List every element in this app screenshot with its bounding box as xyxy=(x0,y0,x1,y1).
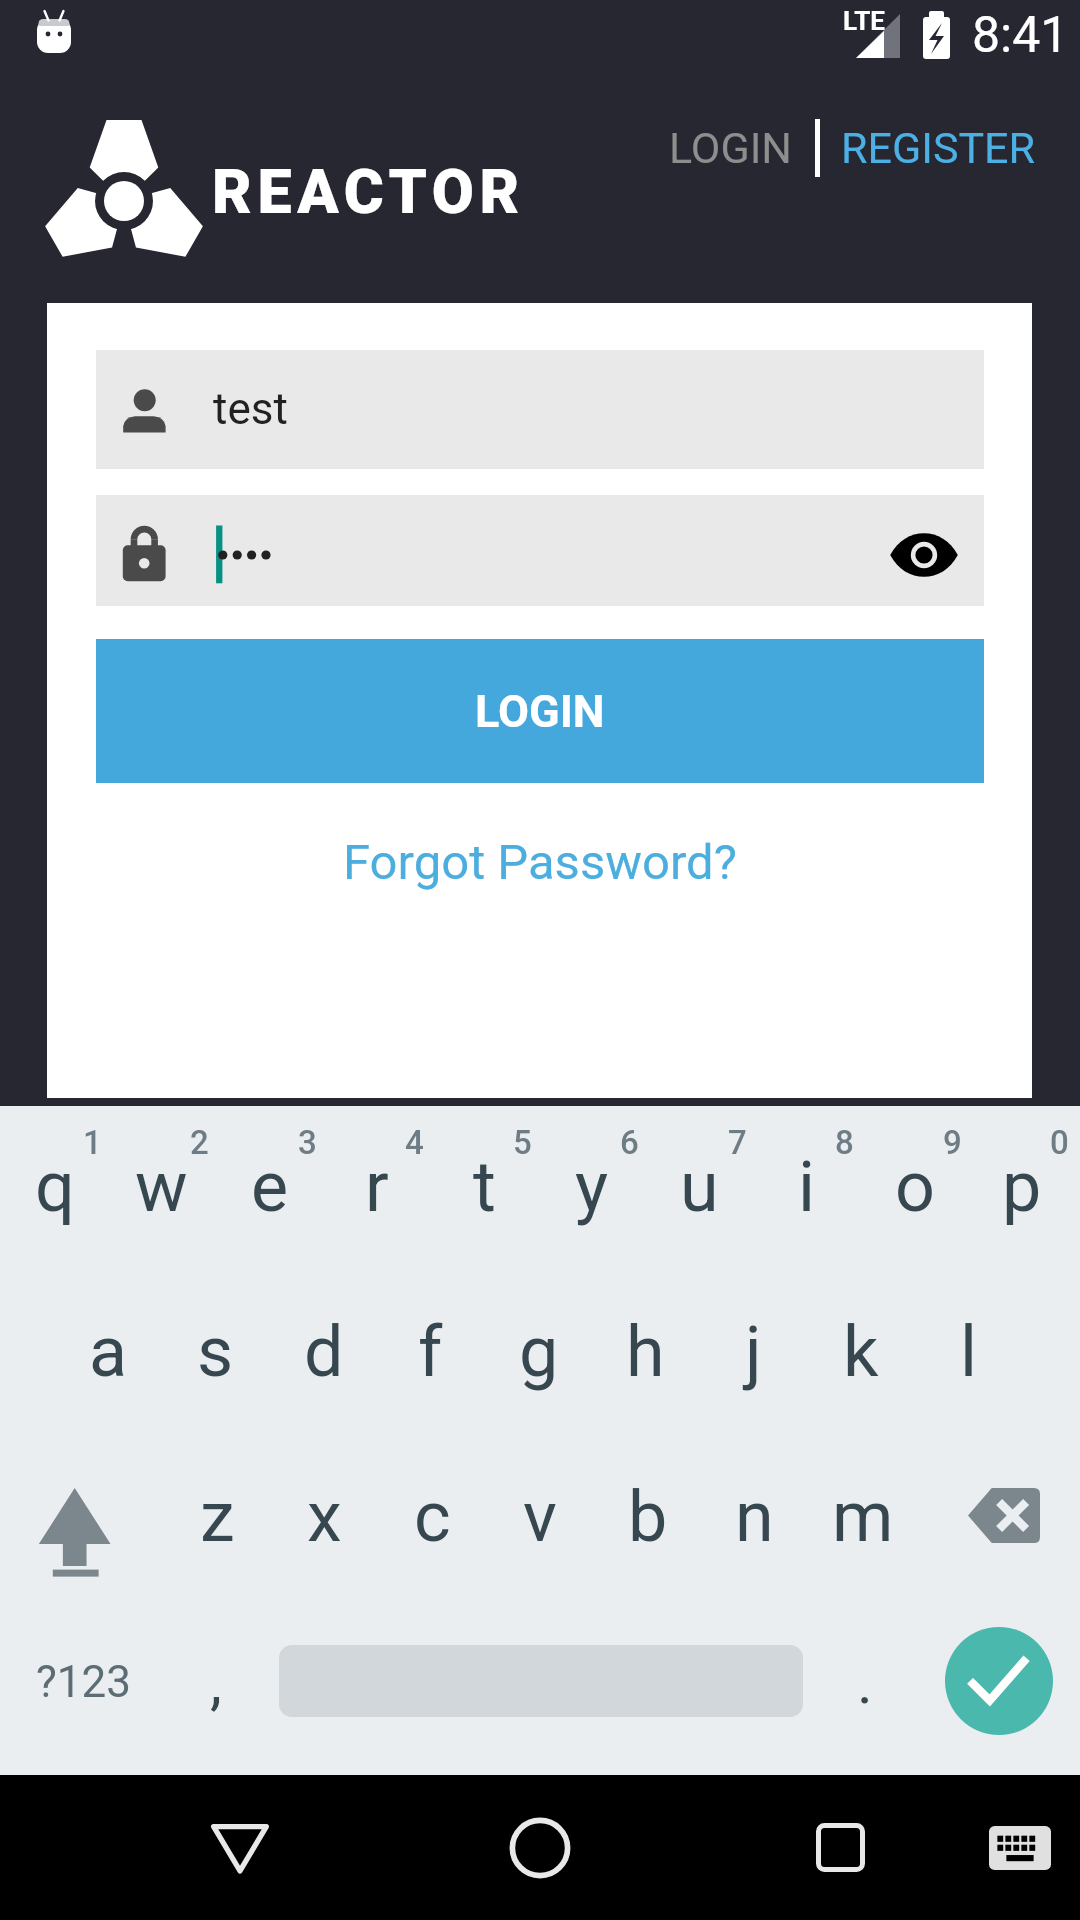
staticText: 2 xyxy=(190,1123,209,1162)
button[interactable]: q xyxy=(1,1100,108,1258)
button[interactable]: i xyxy=(753,1100,860,1258)
staticText: , xyxy=(210,1647,222,1717)
staticText: i xyxy=(798,1146,816,1228)
button[interactable]: g xyxy=(485,1282,592,1422)
button[interactable]: p xyxy=(968,1100,1075,1258)
button[interactable]: e xyxy=(216,1100,323,1258)
staticText: REACTOR xyxy=(212,156,525,227)
staticText: g xyxy=(519,1311,559,1393)
staticText: z xyxy=(200,1476,235,1558)
staticText: ?123 xyxy=(36,1656,131,1708)
staticText: c xyxy=(414,1476,451,1558)
button[interactable]: Recent apps xyxy=(780,1775,900,1920)
staticText: 8 xyxy=(835,1123,854,1162)
button[interactable]: Show password xyxy=(96,495,984,606)
button[interactable]: Forgot Password? xyxy=(47,807,1032,917)
staticText: y xyxy=(575,1146,609,1228)
staticText: Forgot Password? xyxy=(343,834,737,891)
staticText: . xyxy=(857,1647,873,1717)
button[interactable]: Show password xyxy=(878,509,970,601)
button[interactable]: a xyxy=(55,1282,162,1422)
staticText: l xyxy=(960,1311,978,1393)
staticText: 6 xyxy=(620,1123,639,1162)
staticText: d xyxy=(304,1311,344,1393)
staticText: j xyxy=(745,1311,762,1393)
button[interactable]: c xyxy=(379,1447,486,1587)
staticText: 4 xyxy=(405,1123,424,1162)
button[interactable]: s xyxy=(162,1282,269,1422)
staticText: w xyxy=(135,1146,188,1228)
button[interactable]: l xyxy=(915,1282,1022,1422)
button[interactable]: . xyxy=(812,1617,917,1747)
button[interactable]: b xyxy=(594,1447,701,1587)
button[interactable]: t xyxy=(431,1100,538,1258)
button[interactable]: , xyxy=(163,1617,268,1747)
button[interactable]: x xyxy=(271,1447,378,1587)
button[interactable]: ?123 xyxy=(21,1617,146,1747)
staticText: LOGIN xyxy=(669,123,793,173)
button[interactable]: Done xyxy=(945,1627,1053,1735)
button[interactable]: y xyxy=(538,1100,645,1258)
button[interactable]: d xyxy=(270,1282,377,1422)
staticText: e xyxy=(251,1146,289,1228)
staticText: 0 xyxy=(1050,1123,1069,1162)
button[interactable]: LOGIN xyxy=(638,106,823,190)
staticText: n xyxy=(735,1476,774,1558)
button[interactable]: test xyxy=(96,350,984,469)
button[interactable]: REGISTER xyxy=(820,106,1080,190)
button[interactable]: LOGIN xyxy=(96,639,984,783)
staticText: m xyxy=(832,1476,894,1558)
staticText: a xyxy=(89,1311,128,1393)
staticText: 7 xyxy=(728,1123,747,1162)
staticText: 9 xyxy=(943,1123,962,1162)
staticText: 3 xyxy=(298,1123,317,1162)
button[interactable]: u xyxy=(646,1100,753,1258)
staticText: REGISTER xyxy=(841,123,1036,173)
staticText: k xyxy=(843,1311,879,1393)
button[interactable]: Shift xyxy=(0,1466,150,1606)
button[interactable]: k xyxy=(807,1282,914,1422)
button[interactable]: Backspace xyxy=(940,1466,1080,1606)
button[interactable]: n xyxy=(701,1447,808,1587)
button[interactable]: o xyxy=(861,1100,968,1258)
button[interactable]: f xyxy=(377,1282,484,1422)
staticText: s xyxy=(197,1311,234,1393)
staticText: 8:41 xyxy=(972,6,1069,65)
staticText: b xyxy=(628,1476,668,1558)
button[interactable]: v xyxy=(486,1447,593,1587)
staticText: u xyxy=(680,1146,719,1228)
staticText: h xyxy=(626,1311,665,1393)
button[interactable]: z xyxy=(164,1447,271,1587)
staticText: 1 xyxy=(83,1123,102,1162)
staticText: r xyxy=(365,1146,389,1228)
staticText: o xyxy=(895,1146,935,1228)
staticText: LTE xyxy=(843,6,885,36)
staticText: LOGIN xyxy=(475,685,605,738)
button[interactable]: h xyxy=(592,1282,699,1422)
button[interactable]: Home xyxy=(480,1775,600,1920)
button[interactable]: Switch keyboard xyxy=(960,1775,1080,1920)
staticText: test xyxy=(213,383,288,435)
staticText: x xyxy=(307,1476,342,1558)
staticText: f xyxy=(418,1311,443,1393)
button[interactable]: r xyxy=(323,1100,430,1258)
staticText: v xyxy=(523,1476,557,1558)
staticText: p xyxy=(1002,1146,1042,1228)
button[interactable]: m xyxy=(809,1447,916,1587)
button[interactable]: w xyxy=(108,1100,215,1258)
staticText: t xyxy=(473,1146,496,1228)
staticText: q xyxy=(35,1146,75,1228)
button[interactable]: j xyxy=(700,1282,807,1422)
staticText: 5 xyxy=(513,1123,532,1162)
button[interactable]: Back xyxy=(180,1770,300,1915)
